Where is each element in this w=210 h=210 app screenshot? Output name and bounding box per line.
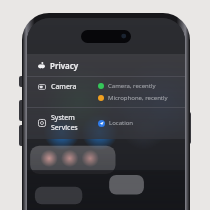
button[interactable]: System Services	[27, 108, 185, 139]
staticText: Camera	[51, 82, 77, 92]
other: Location	[98, 120, 105, 127]
staticText: Location	[109, 119, 134, 127]
button[interactable]: Camera	[27, 77, 185, 107]
staticText: Camera, recently	[108, 82, 156, 90]
staticText: System Services	[51, 113, 98, 133]
staticText: Privacy	[50, 60, 79, 71]
button[interactable]: Privacy	[27, 54, 185, 76]
staticText: Microphone, recently	[108, 94, 168, 102]
